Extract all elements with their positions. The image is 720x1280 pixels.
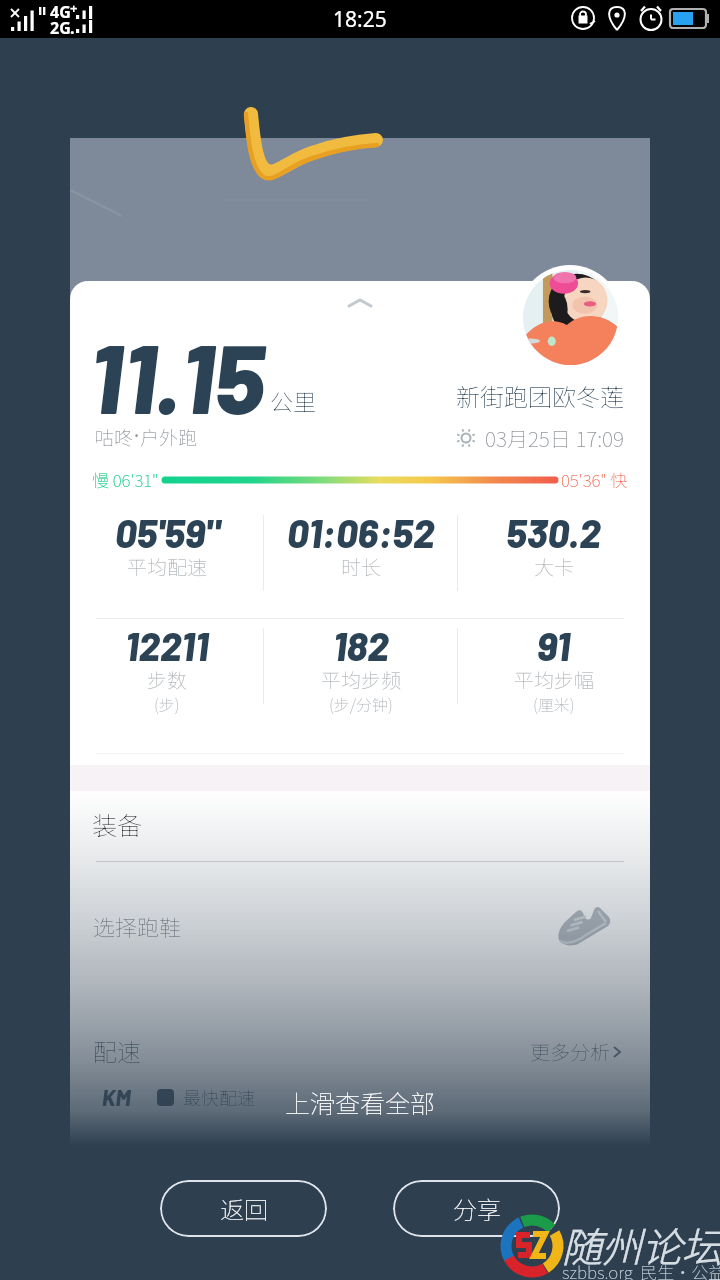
- staticText: (厘米): [533, 692, 575, 715]
- staticText: 2G: [50, 17, 71, 39]
- staticText: 平均步频: [321, 665, 401, 694]
- staticText: (步/分钟): [329, 692, 393, 715]
- button[interactable]: 返回: [160, 1180, 327, 1237]
- staticText: (步): [154, 692, 180, 715]
- staticText: 大卡: [534, 552, 574, 581]
- staticText: 配速: [93, 1033, 141, 1068]
- button[interactable]: 分享: [393, 1180, 560, 1237]
- staticText: 530.2: [506, 509, 601, 556]
- button[interactable]: 更多分析: [490, 1037, 624, 1066]
- staticText: 平均配速: [127, 552, 207, 581]
- staticText: 户外跑: [140, 423, 198, 451]
- staticText: 91: [537, 622, 570, 669]
- staticText: 05'36" 快: [561, 467, 628, 492]
- staticText: .: [70, 17, 75, 39]
- staticText: 11.15: [89, 318, 265, 433]
- staticText: 返回: [220, 1191, 268, 1226]
- staticText: 上滑查看全部: [70, 1084, 650, 1120]
- staticText: 4G: [50, 1, 71, 23]
- staticText: 更多分析: [530, 1037, 610, 1066]
- staticText: 步数: [147, 665, 187, 694]
- staticText: 03月25日 17:09: [485, 423, 624, 453]
- staticText: 12211: [125, 622, 209, 669]
- staticText: 最快配速: [183, 1084, 255, 1110]
- staticText: ·: [134, 423, 140, 449]
- staticText: 公里: [270, 384, 316, 417]
- staticText: KM: [102, 1084, 131, 1110]
- staticText: 新街跑团欧冬莲: [394, 378, 624, 413]
- staticText: 时长: [341, 552, 381, 581]
- staticText: 分享: [453, 1191, 501, 1226]
- button[interactable]: Collapse: [340, 292, 380, 314]
- staticText: 装备: [92, 806, 143, 842]
- staticText: 182: [333, 622, 389, 669]
- staticText: 平均步幅: [514, 665, 594, 694]
- staticText: 慢 06'31": [92, 467, 159, 492]
- button[interactable]: User avatar: [518, 265, 622, 369]
- staticText: 随州论坛: [562, 1216, 720, 1274]
- staticText: +: [70, 0, 78, 17]
- staticText: 18:25: [333, 5, 387, 34]
- staticText: 05'59": [115, 509, 220, 556]
- staticText: 咕咚: [95, 423, 134, 451]
- staticText: 选择跑鞋: [93, 910, 182, 942]
- staticText: szbbs.org 民生·公益: [562, 1259, 720, 1280]
- staticText: 01:06:52: [287, 509, 435, 556]
